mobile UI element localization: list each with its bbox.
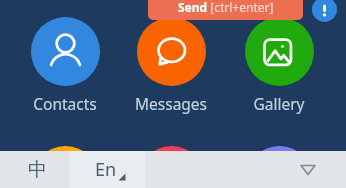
button[interactable]: Messages [118, 17, 224, 107]
staticText: Gallery [226, 93, 332, 114]
button[interactable]: 中 [0, 151, 70, 188]
button[interactable]: Clock [31, 146, 100, 188]
button[interactable]: En [70, 151, 145, 188]
staticText: En [95, 157, 117, 182]
staticText: 中 [28, 158, 47, 182]
button[interactable]: Hide keyboard [270, 151, 346, 188]
staticText: Messages [118, 93, 224, 114]
button[interactable]: Contacts [12, 17, 118, 107]
staticText: Send [ctrl+enter] [178, 0, 274, 15]
button[interactable]: Send [ctrl+enter] [148, 0, 303, 20]
button[interactable]: Gallery [226, 17, 332, 107]
button[interactable]: Calendar [245, 146, 314, 188]
staticText: Contacts [12, 93, 118, 114]
button[interactable]: Info [312, 0, 337, 22]
button[interactable]: Music [137, 146, 206, 188]
